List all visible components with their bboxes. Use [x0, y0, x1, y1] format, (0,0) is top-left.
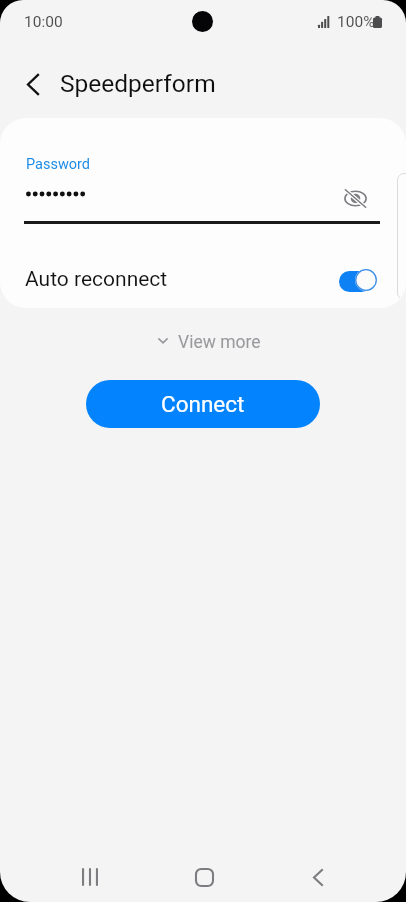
button[interactable]: Home [160, 856, 248, 900]
staticText: Speedperform [60, 69, 216, 98]
button[interactable]: Recents [46, 856, 134, 900]
staticText: Password [26, 156, 91, 173]
button[interactable]: Back [274, 856, 362, 900]
staticText: View more [178, 332, 261, 352]
staticText: Auto reconnect [25, 267, 168, 292]
button[interactable]: Connect [86, 380, 320, 428]
button[interactable]: Show password [333, 176, 377, 220]
staticText: 10:00 [24, 13, 63, 31]
button[interactable]: Auto reconnect [336, 267, 380, 295]
staticText: 100% [337, 13, 375, 31]
button[interactable]: Back [9, 60, 57, 108]
button[interactable]: View more [148, 326, 271, 358]
staticText: Connect [161, 391, 245, 417]
